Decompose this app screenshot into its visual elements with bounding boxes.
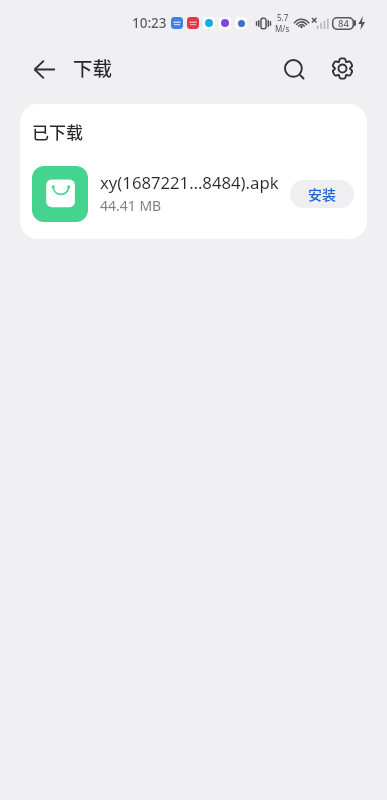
staticText: 已下载: [32, 119, 83, 144]
staticText: 84: [338, 17, 349, 30]
staticText: M/s: [275, 23, 290, 34]
staticText: 下载: [73, 53, 113, 81]
button[interactable]: 安装: [290, 180, 354, 208]
staticText: 10:23: [132, 14, 167, 32]
staticText: 44.41 MB: [100, 196, 162, 215]
button[interactable]: Back: [26, 51, 62, 87]
staticText: 5.7: [277, 12, 289, 23]
button[interactable]: Search: [277, 52, 314, 89]
staticText: 安装: [308, 184, 336, 204]
button[interactable]: Settings: [324, 50, 361, 87]
button[interactable]: xy(1687221…8484).apk: [32, 166, 354, 222]
staticText: xy(1687221…8484).apk: [100, 171, 279, 194]
